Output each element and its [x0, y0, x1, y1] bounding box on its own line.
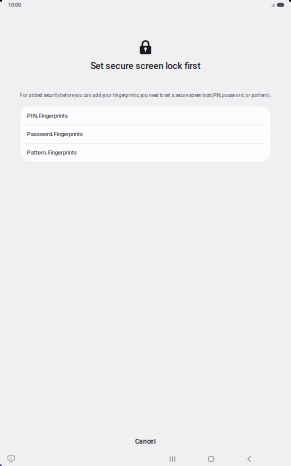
staticText: Password, Fingerprints — [27, 131, 83, 138]
staticText: 10:00 — [8, 2, 21, 8]
button[interactable]: Recent apps — [153, 453, 192, 464]
staticText: Set secure screen lock first — [90, 61, 200, 71]
staticText: Pattern, Fingerprints — [27, 149, 77, 156]
button[interactable]: Cancel — [0, 435, 291, 448]
staticText: Cancel — [135, 438, 156, 445]
button[interactable]: Home — [192, 453, 230, 464]
button[interactable]: Password, Fingerprints — [20, 125, 270, 143]
button[interactable]: Back — [230, 453, 269, 464]
staticText: PIN, Fingerprints — [27, 112, 68, 119]
button[interactable]: Pattern, Fingerprints — [20, 144, 270, 161]
button[interactable]: Hide keyboard — [0, 453, 22, 464]
staticText: For added security before you can add yo… — [20, 93, 271, 98]
button[interactable]: PIN, Fingerprints — [20, 107, 270, 125]
